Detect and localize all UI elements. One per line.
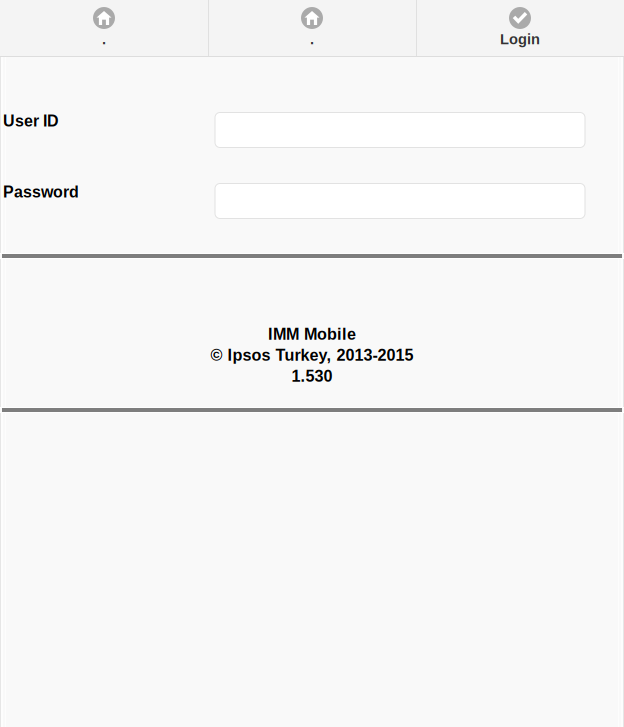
staticText: © Ipsos Turkey, 2013-2015 [210, 346, 413, 364]
button[interactable]: User ID [215, 112, 585, 147]
staticText: IMM Mobile [268, 325, 356, 343]
staticText: . [102, 31, 106, 47]
staticText: 1.530 [291, 367, 332, 385]
staticText: Password [3, 183, 79, 201]
button[interactable]: Survey [208, 0, 416, 56]
button[interactable]: Home [0, 0, 208, 56]
staticText: User ID [3, 112, 59, 130]
staticText: Login [500, 31, 540, 47]
staticText: . [310, 31, 314, 47]
button[interactable]: Login [416, 0, 624, 56]
